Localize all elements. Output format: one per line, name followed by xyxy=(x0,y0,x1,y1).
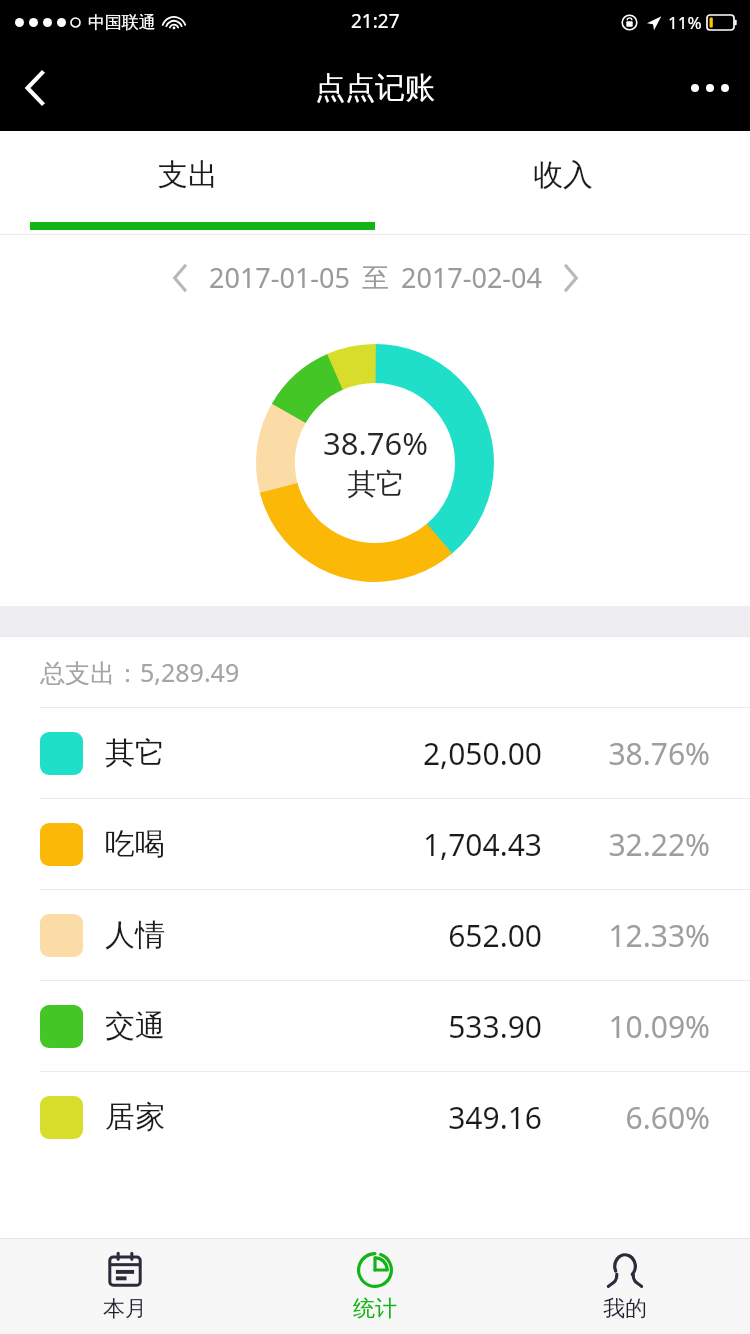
staticText: 我的 xyxy=(603,1295,647,1323)
staticText: 32.22% xyxy=(608,824,710,865)
staticText: 2,050.00 xyxy=(422,733,542,774)
button[interactable]: Back xyxy=(0,44,70,131)
button[interactable]: 吃喝 xyxy=(0,799,750,889)
button[interactable]: More options xyxy=(670,44,750,131)
staticText: 2017-02-04 xyxy=(401,259,542,296)
staticText: 1,704.43 xyxy=(422,824,542,865)
staticText: 2017-01-05 xyxy=(209,259,350,296)
button[interactable]: 收入 xyxy=(375,131,750,234)
staticText: 21:27 xyxy=(351,8,400,34)
staticText: 总支出：5,289.49 xyxy=(40,655,240,689)
staticText: 6.60% xyxy=(625,1097,710,1138)
staticText: 吃喝 xyxy=(105,825,165,863)
button[interactable]: 其它 xyxy=(0,708,750,798)
staticText: 其它 xyxy=(347,466,405,503)
staticText: 652.00 xyxy=(448,915,542,956)
button[interactable]: 人情 xyxy=(0,890,750,980)
button[interactable]: Previous period xyxy=(159,257,201,299)
staticText: 点点记账 xyxy=(315,69,435,107)
button[interactable]: 居家 xyxy=(0,1072,750,1162)
staticText: 居家 xyxy=(105,1098,165,1136)
staticText: 中国联通 xyxy=(88,12,156,33)
staticText: 交通 xyxy=(105,1007,165,1045)
staticText: 349.16 xyxy=(448,1097,542,1138)
button[interactable]: Profile xyxy=(500,1239,750,1334)
staticText: 12.33% xyxy=(608,915,710,956)
staticText: 11% xyxy=(668,11,702,34)
staticText: 本月 xyxy=(103,1295,147,1323)
staticText: 收入 xyxy=(533,156,593,194)
button[interactable]: Statistics xyxy=(250,1239,500,1334)
staticText: 人情 xyxy=(105,916,165,954)
staticText: 统计 xyxy=(353,1295,397,1323)
staticText: 10.09% xyxy=(608,1006,710,1047)
staticText: 38.76% xyxy=(608,733,710,774)
staticText: 支出 xyxy=(158,156,218,194)
button[interactable]: Month xyxy=(0,1239,250,1334)
button[interactable]: Next period xyxy=(550,257,592,299)
staticText: 533.90 xyxy=(448,1006,542,1047)
staticText: 至 xyxy=(362,261,389,295)
staticText: 38.76% xyxy=(323,422,428,464)
staticText: 其它 xyxy=(105,734,165,772)
button[interactable]: 支出 xyxy=(0,131,375,234)
button[interactable]: 交通 xyxy=(0,981,750,1071)
